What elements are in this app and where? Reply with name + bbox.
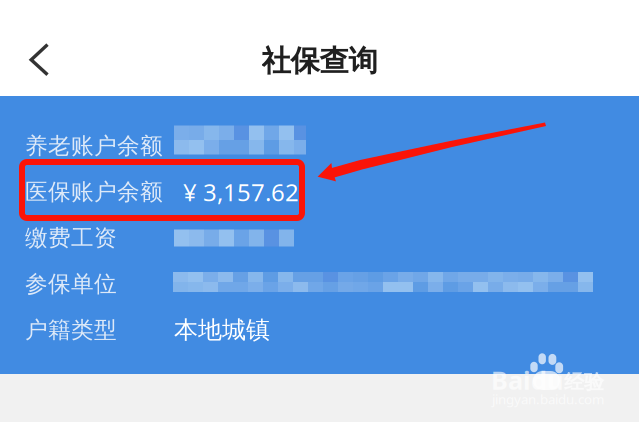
button[interactable]: Back [1,30,61,90]
staticText: 缴费工资 [25,224,117,252]
staticText: 户籍类型 [25,316,117,344]
staticText: ¥ 3,157.62 [183,176,299,208]
staticText: Baidu [491,363,563,397]
staticText: 本地城镇 [174,315,270,345]
staticText: 社保查询 [261,43,377,79]
staticText: 医保账户余额 [25,178,163,206]
staticText: 经验 [564,370,604,394]
staticText: 养老账户余额 [25,132,163,160]
staticText: 参保单位 [25,270,117,298]
